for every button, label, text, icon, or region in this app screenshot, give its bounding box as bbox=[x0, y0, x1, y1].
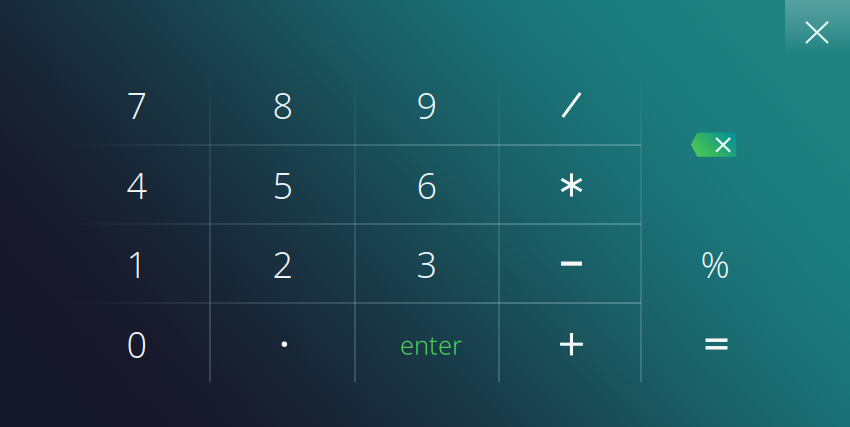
button[interactable]: 1 bbox=[65, 224, 209, 303]
button[interactable]: Close bbox=[785, 0, 850, 70]
button[interactable]: 5 bbox=[211, 145, 355, 224]
button[interactable]: Multiply bbox=[498, 145, 642, 224]
staticText: 1 bbox=[126, 240, 147, 288]
button[interactable]: 7 bbox=[65, 65, 209, 144]
button[interactable]: 6 bbox=[355, 145, 499, 224]
staticText: 9 bbox=[416, 81, 437, 129]
button[interactable]: 4 bbox=[65, 145, 209, 224]
button[interactable]: Decimal point bbox=[211, 304, 355, 383]
button[interactable]: 8 bbox=[211, 65, 355, 144]
button[interactable]: 3 bbox=[355, 224, 499, 303]
staticText: 8 bbox=[272, 81, 293, 129]
staticText: 6 bbox=[416, 161, 437, 209]
button[interactable]: % bbox=[643, 224, 787, 303]
staticText: % bbox=[700, 240, 729, 288]
staticText: 0 bbox=[126, 320, 147, 368]
staticText: 7 bbox=[126, 81, 147, 129]
button[interactable]: Minus bbox=[498, 224, 642, 303]
button[interactable]: enter bbox=[359, 304, 503, 383]
staticText: 4 bbox=[126, 161, 147, 209]
button[interactable]: Equals bbox=[643, 304, 787, 383]
button[interactable]: Delete bbox=[641, 105, 785, 184]
button[interactable]: 9 bbox=[355, 65, 499, 144]
staticText: 5 bbox=[272, 161, 293, 209]
staticText: enter bbox=[400, 328, 462, 362]
button[interactable]: Plus bbox=[498, 304, 642, 383]
button[interactable]: 2 bbox=[211, 224, 355, 303]
button[interactable]: Divide bbox=[498, 65, 642, 144]
staticText: 2 bbox=[272, 240, 293, 288]
button[interactable]: 0 bbox=[65, 304, 209, 383]
staticText: 3 bbox=[416, 240, 437, 288]
